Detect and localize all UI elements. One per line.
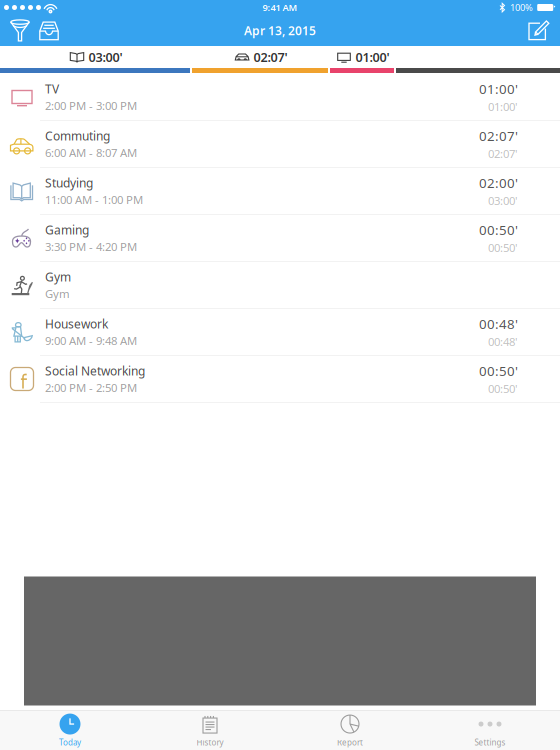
staticText: 00:50'	[479, 221, 518, 239]
button[interactable]: Settings	[420, 711, 560, 750]
button[interactable]: Archive	[34, 17, 64, 43]
staticText: 01:00'	[479, 80, 518, 98]
button[interactable]: Gaming	[0, 215, 560, 262]
staticText: 6:00 AM - 8:07 AM	[45, 145, 137, 160]
staticText: 00:50'	[479, 362, 518, 380]
staticText: 100%	[510, 1, 533, 14]
staticText: 00:50'	[488, 381, 518, 396]
staticText: 02:07'	[479, 127, 518, 145]
staticText: Gaming	[45, 222, 89, 238]
button[interactable]: Compose	[525, 18, 554, 43]
staticText: TV	[45, 81, 59, 97]
staticText: 03:00'	[88, 48, 122, 66]
staticText: 01:00'	[355, 48, 389, 66]
staticText: 00:50'	[488, 240, 518, 255]
staticText: 00:48'	[479, 315, 518, 333]
staticText: 03:00'	[488, 193, 518, 208]
staticText: 9:00 AM - 9:48 AM	[45, 333, 137, 348]
staticText: 00:48'	[488, 334, 518, 349]
staticText: 02:00'	[479, 174, 518, 192]
button[interactable]: Studying	[0, 168, 560, 215]
staticText: Settings	[474, 737, 505, 748]
button[interactable]: Commuting	[0, 121, 560, 168]
staticText: Apr 13, 2015	[244, 22, 316, 39]
staticText: 3:30 PM - 4:20 PM	[45, 239, 137, 254]
staticText: 9:41 AM	[262, 1, 297, 14]
staticText: Commuting	[45, 128, 110, 144]
staticText: Social Networking	[45, 363, 145, 379]
staticText: History	[196, 737, 223, 748]
staticText: Today	[59, 737, 81, 748]
staticText: Report	[337, 737, 363, 748]
staticText: 2:00 PM - 3:00 PM	[45, 98, 137, 113]
staticText: 2:00 PM - 2:50 PM	[45, 380, 137, 395]
button[interactable]: Report	[280, 711, 420, 750]
staticText: 11:00 AM - 1:00 PM	[45, 192, 143, 207]
staticText: 02:07'	[253, 48, 287, 66]
button[interactable]: History	[140, 711, 280, 750]
staticText: Housework	[45, 316, 108, 332]
button[interactable]: Social Networking	[0, 356, 560, 403]
staticText: Studying	[45, 175, 93, 191]
staticText: Gym	[45, 286, 70, 301]
button[interactable]: Gym	[0, 262, 560, 309]
button[interactable]: Today	[0, 711, 140, 750]
button[interactable]: Housework	[0, 309, 560, 356]
button[interactable]: Filter	[6, 18, 34, 42]
staticText: Gym	[45, 269, 71, 285]
staticText: 01:00'	[488, 99, 518, 114]
staticText: 02:07'	[488, 146, 518, 161]
button[interactable]: TV	[0, 74, 560, 121]
